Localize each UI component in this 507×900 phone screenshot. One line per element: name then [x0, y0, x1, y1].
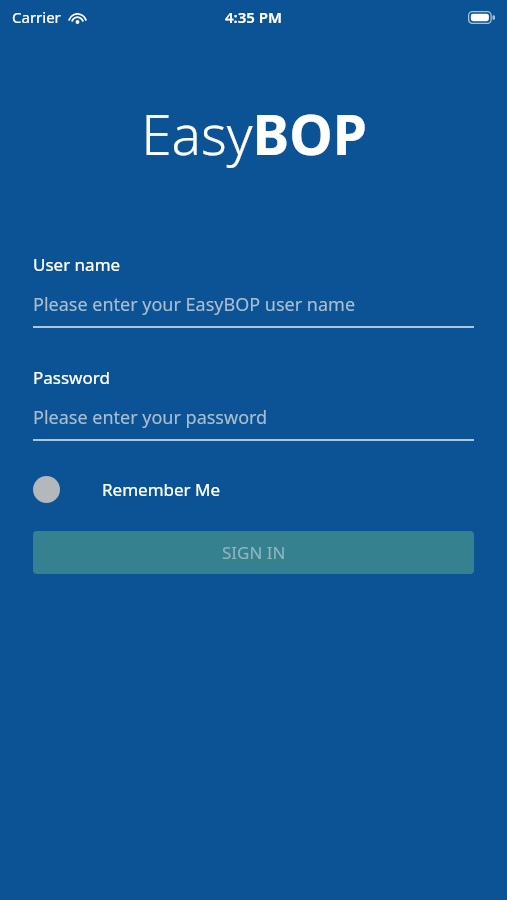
- staticText: Please enter your EasyBOP user name: [33, 292, 356, 317]
- staticText: User name: [33, 253, 121, 276]
- button[interactable]: Please enter your EasyBOP user name: [33, 292, 474, 328]
- staticText: Please enter your password: [33, 405, 268, 430]
- button[interactable]: SIGN IN: [33, 531, 474, 574]
- other: Wi-Fi: [68, 10, 87, 24]
- staticText: Carrier: [12, 7, 61, 27]
- staticText: 4:35 PM: [225, 7, 282, 27]
- staticText: SIGN IN: [222, 541, 286, 564]
- staticText: EasyBOP: [141, 96, 367, 171]
- staticText: Remember Me: [102, 478, 221, 501]
- staticText: Password: [33, 366, 110, 389]
- button[interactable]: Remember Me: [33, 468, 474, 510]
- button[interactable]: Please enter your password: [33, 405, 474, 441]
- other: Battery: [468, 11, 495, 24]
